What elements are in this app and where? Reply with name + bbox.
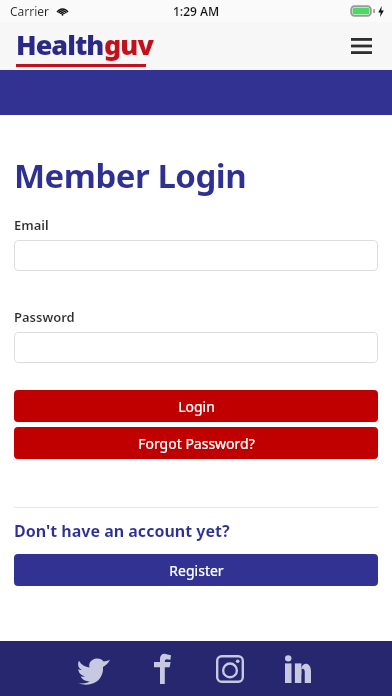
button[interactable]: Forgot Password? bbox=[14, 427, 378, 459]
staticText: Login bbox=[178, 397, 215, 416]
button[interactable]: Open menu bbox=[344, 29, 378, 63]
button[interactable]: Instagram bbox=[211, 650, 249, 688]
button[interactable]: Text input bbox=[14, 332, 378, 363]
staticText: Member Login bbox=[14, 153, 247, 198]
button[interactable]: Health bbox=[16, 26, 153, 67]
staticText: Health bbox=[16, 26, 104, 63]
staticText: Don't have an account yet? bbox=[14, 520, 230, 542]
staticText: Email bbox=[14, 216, 49, 234]
button[interactable]: Register bbox=[14, 554, 378, 586]
button[interactable]: LinkedIn bbox=[279, 650, 317, 688]
staticText: 1:29 AM bbox=[173, 3, 220, 19]
button[interactable]: Login bbox=[14, 390, 378, 422]
button[interactable]: Text input bbox=[14, 240, 378, 271]
staticText: guv bbox=[104, 26, 153, 63]
staticText: Password bbox=[14, 308, 75, 326]
button[interactable]: Facebook bbox=[143, 650, 181, 688]
staticText: Forgot Password? bbox=[138, 434, 255, 453]
staticText: Carrier bbox=[10, 3, 50, 19]
staticText: Register bbox=[169, 561, 224, 580]
button[interactable]: Twitter bbox=[75, 650, 113, 688]
